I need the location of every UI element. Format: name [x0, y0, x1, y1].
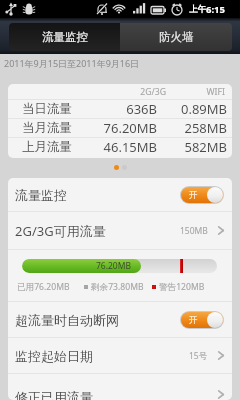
button[interactable]: 修正已用流量: [8, 374, 232, 400]
button[interactable]: 超流量时自动断网: [8, 302, 232, 337]
staticText: 2011年9月15日至2011年9月16日: [4, 57, 140, 69]
staticText: 剩余73.80MB: [91, 281, 144, 293]
staticText: 开: [189, 315, 198, 326]
staticText: 76.20MB: [96, 260, 131, 272]
staticText: 258MB: [157, 119, 227, 137]
staticText: 0.89MB: [157, 100, 227, 118]
staticText: 防火墙: [159, 30, 194, 44]
staticText: 流量监控: [15, 187, 67, 203]
staticText: 636B: [93, 100, 157, 118]
staticText: 修正已用流量: [15, 389, 93, 400]
staticText: 上午: [189, 4, 206, 15]
staticText: 监控起始日期: [15, 348, 93, 364]
staticText: WIFI: [166, 86, 225, 98]
staticText: 流量监控: [42, 30, 88, 44]
staticText: 警告120MB: [159, 281, 205, 293]
staticText: 已用76.20MB: [17, 281, 70, 293]
staticText: 582MB: [157, 138, 227, 156]
staticText: 46.15MB: [93, 138, 157, 156]
staticText: 2G/3G: [93, 86, 166, 98]
staticText: 当月流量: [22, 120, 72, 136]
staticText: 150MB: [180, 225, 208, 237]
staticText: 开: [189, 190, 198, 201]
staticText: 当日流量: [22, 101, 72, 117]
staticText: 15号: [189, 350, 208, 362]
staticText: 上月流量: [22, 139, 72, 155]
staticText: 76.20MB: [93, 119, 157, 137]
button[interactable]: 流量监控: [8, 178, 232, 211]
staticText: 超流量时自动断网: [15, 312, 119, 328]
staticText: 2G/3G可用流量: [15, 222, 106, 240]
button[interactable]: 2G/3G可用流量: [8, 212, 232, 249]
button[interactable]: 防火墙: [120, 23, 232, 51]
button[interactable]: 监控起始日期: [8, 338, 232, 373]
button[interactable]: 流量监控: [9, 23, 120, 51]
staticText: 6:15: [206, 3, 225, 16]
